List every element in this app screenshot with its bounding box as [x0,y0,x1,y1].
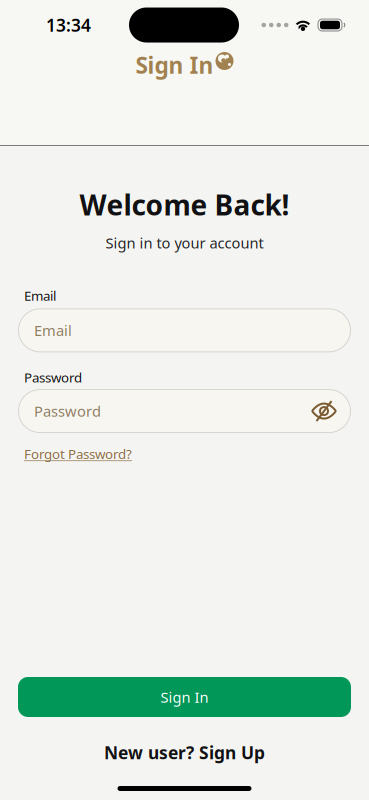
button[interactable]: Password [18,389,351,433]
staticText: Email [24,287,56,304]
staticText: Sign In [160,687,208,707]
staticText: Email [34,321,72,340]
button[interactable]: New user? Sign Up [104,741,265,764]
staticText: Sign In [135,50,213,80]
staticText: Welcome Back! [79,186,289,223]
staticText: 13:34 [46,13,91,36]
staticText: Forgot Password? [24,445,132,463]
button[interactable]: Forgot Password? [18,445,132,463]
button[interactable]: Sign In [18,677,351,717]
staticText: Password [24,368,82,386]
staticText: Password [34,401,101,421]
button[interactable]: Email [18,308,351,352]
staticText: Sign in to your account [105,233,263,253]
staticText: New user? Sign Up [104,741,265,764]
